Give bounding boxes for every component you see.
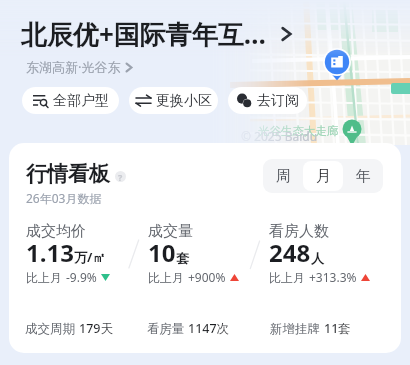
staticText: 比上月: [26, 269, 66, 285]
staticText: 比上月: [148, 269, 188, 285]
staticText: 1.13: [26, 236, 74, 269]
button[interactable]: 年: [343, 161, 383, 191]
staticText: 万/㎡: [74, 248, 106, 266]
staticText: 1147次: [188, 320, 230, 337]
button[interactable]: 全部户型: [22, 87, 119, 114]
button[interactable]: 周: [263, 161, 303, 191]
staticText: 成交量: [148, 222, 193, 241]
staticText: 套: [176, 250, 189, 266]
staticText: 光谷生态大走廊: [258, 124, 339, 138]
staticText: +900%: [188, 269, 226, 285]
staticText: 成交均价: [26, 222, 86, 241]
staticText: 看房人数: [269, 222, 329, 241]
staticText: © 2025 Baidu: [241, 128, 318, 144]
staticText: 248: [269, 236, 311, 269]
staticText: 去订阅: [257, 92, 299, 110]
staticText: 新增挂牌: [270, 320, 324, 337]
button[interactable]: 北辰优+国际青年互…: [21, 16, 292, 52]
staticText: 全部户型: [53, 92, 109, 110]
staticText: 看房量: [147, 320, 188, 337]
staticText: 179天: [79, 320, 113, 337]
button[interactable]: 更换小区: [129, 87, 218, 114]
button[interactable]: 去订阅: [228, 87, 307, 114]
staticText: 人: [311, 250, 324, 266]
staticText: 北辰优+国际青年互…: [21, 16, 267, 52]
staticText: 周: [276, 167, 291, 186]
staticText: 26年03月数据: [26, 190, 102, 206]
staticText: +313.3%: [309, 269, 357, 285]
staticText: ?: [118, 171, 123, 182]
staticText: 月: [316, 167, 331, 186]
staticText: 10: [148, 236, 176, 269]
staticText: 行情看板: [26, 161, 110, 187]
staticText: 11套: [324, 320, 351, 337]
staticText: 年: [356, 167, 371, 186]
staticText: 更换小区: [156, 92, 212, 110]
staticText: -9.9%: [66, 269, 97, 285]
staticText: 比上月: [269, 269, 309, 285]
button[interactable]: 东湖高新·光谷东: [26, 58, 132, 76]
staticText: 成交周期: [25, 320, 79, 337]
staticText: 东湖高新·光谷东: [26, 58, 121, 76]
button[interactable]: 月: [303, 161, 343, 191]
button[interactable]: 说明: [115, 171, 126, 182]
